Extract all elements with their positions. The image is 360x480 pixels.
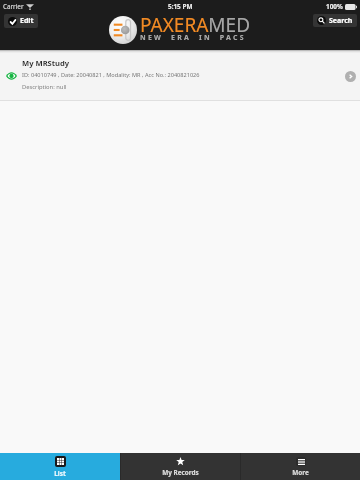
button[interactable]: My MRStudy [0, 50, 360, 100]
staticText: More [292, 468, 309, 477]
button[interactable]: Open study [345, 71, 356, 82]
button[interactable]: List [0, 453, 120, 480]
staticText: List [54, 469, 66, 478]
button[interactable]: My Records [121, 453, 240, 480]
staticText: NEW ERA IN PACS [140, 33, 246, 43]
staticText: PAXERAMED [140, 12, 251, 38]
staticText: ID: 04010749 , Date: 20040821 , Modality… [22, 71, 200, 79]
staticText: My MRStudy [22, 58, 70, 68]
staticText: Description: null [22, 83, 67, 91]
staticText: 5:15 PM [168, 2, 193, 11]
staticText: My Records [162, 468, 199, 477]
button[interactable]: More [241, 453, 360, 480]
staticText: Carrier [3, 2, 24, 10]
staticText: 100% [326, 2, 343, 11]
staticText: Edit [20, 16, 34, 26]
button[interactable]: Edit [4, 14, 38, 28]
button[interactable]: Search [313, 14, 357, 27]
staticText: Search [329, 16, 353, 26]
